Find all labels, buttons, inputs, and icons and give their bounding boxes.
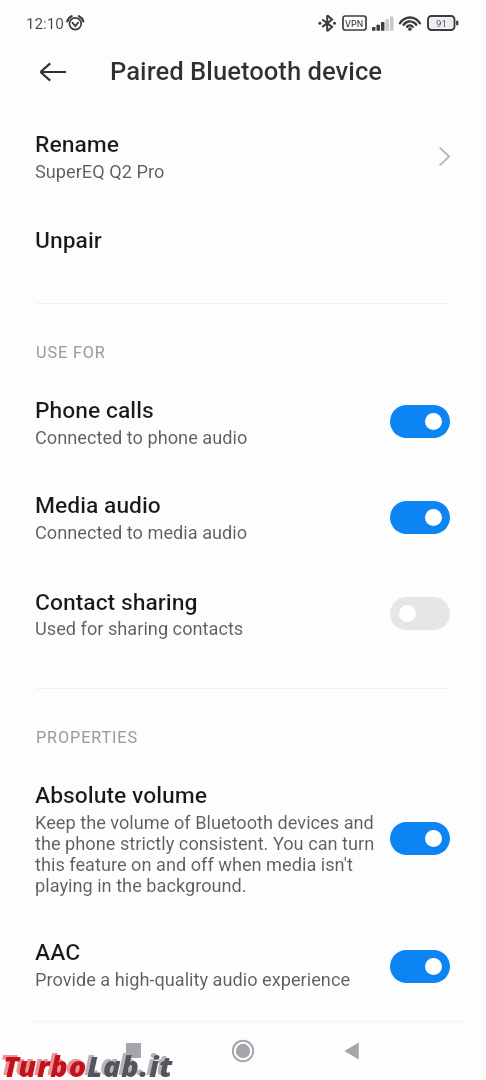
button[interactable]: Media audio: [0, 473, 486, 547]
button[interactable]: AAC: [0, 920, 486, 994]
staticText: AAC: [35, 939, 81, 966]
button[interactable]: Switch off: [390, 597, 450, 630]
button[interactable]: Contact sharing: [0, 570, 486, 644]
staticText: Paired Bluetooth device: [110, 56, 383, 86]
staticText: USE FOR: [36, 343, 106, 362]
button[interactable]: Navigate up: [37, 56, 69, 88]
staticText: Absolute volume: [35, 782, 207, 809]
button[interactable]: Switch on: [390, 822, 450, 855]
staticText: Turbo: [3, 1046, 87, 1080]
staticText: PROPERTIES: [36, 728, 138, 747]
staticText: Used for sharing contacts: [35, 618, 244, 639]
button[interactable]: Absolute volume: [0, 764, 486, 902]
staticText: VPN: [345, 18, 364, 29]
button[interactable]: Phone calls: [0, 378, 486, 452]
staticText: Turbo: [0, 1044, 84, 1080]
button[interactable]: Home: [221, 1029, 265, 1073]
staticText: Contact sharing: [35, 589, 198, 616]
button[interactable]: Switch on: [390, 405, 450, 438]
button[interactable]: Recent apps: [111, 1029, 155, 1073]
button[interactable]: Rename: [0, 118, 486, 192]
staticText: 91: [436, 18, 447, 29]
staticText: Lab.it: [87, 1046, 174, 1080]
button[interactable]: Unpair: [0, 212, 486, 274]
staticText: Phone calls: [35, 397, 154, 424]
staticText: Lab.it: [84, 1044, 171, 1080]
button[interactable]: Switch on: [390, 950, 450, 983]
button[interactable]: Switch on: [390, 501, 450, 534]
button[interactable]: Back: [330, 1029, 374, 1073]
staticText: Media audio: [35, 492, 161, 519]
staticText: Keep the volume of Bluetooth devices and…: [35, 812, 380, 896]
staticText: Connected to phone audio: [35, 427, 248, 448]
staticText: Rename: [35, 131, 119, 158]
staticText: Provide a high-quality audio experience: [35, 969, 351, 990]
staticText: Unpair: [35, 227, 102, 254]
staticText: 12:10: [26, 15, 64, 33]
staticText: Connected to media audio: [35, 522, 248, 543]
staticText: SuperEQ Q2 Pro: [35, 161, 165, 182]
